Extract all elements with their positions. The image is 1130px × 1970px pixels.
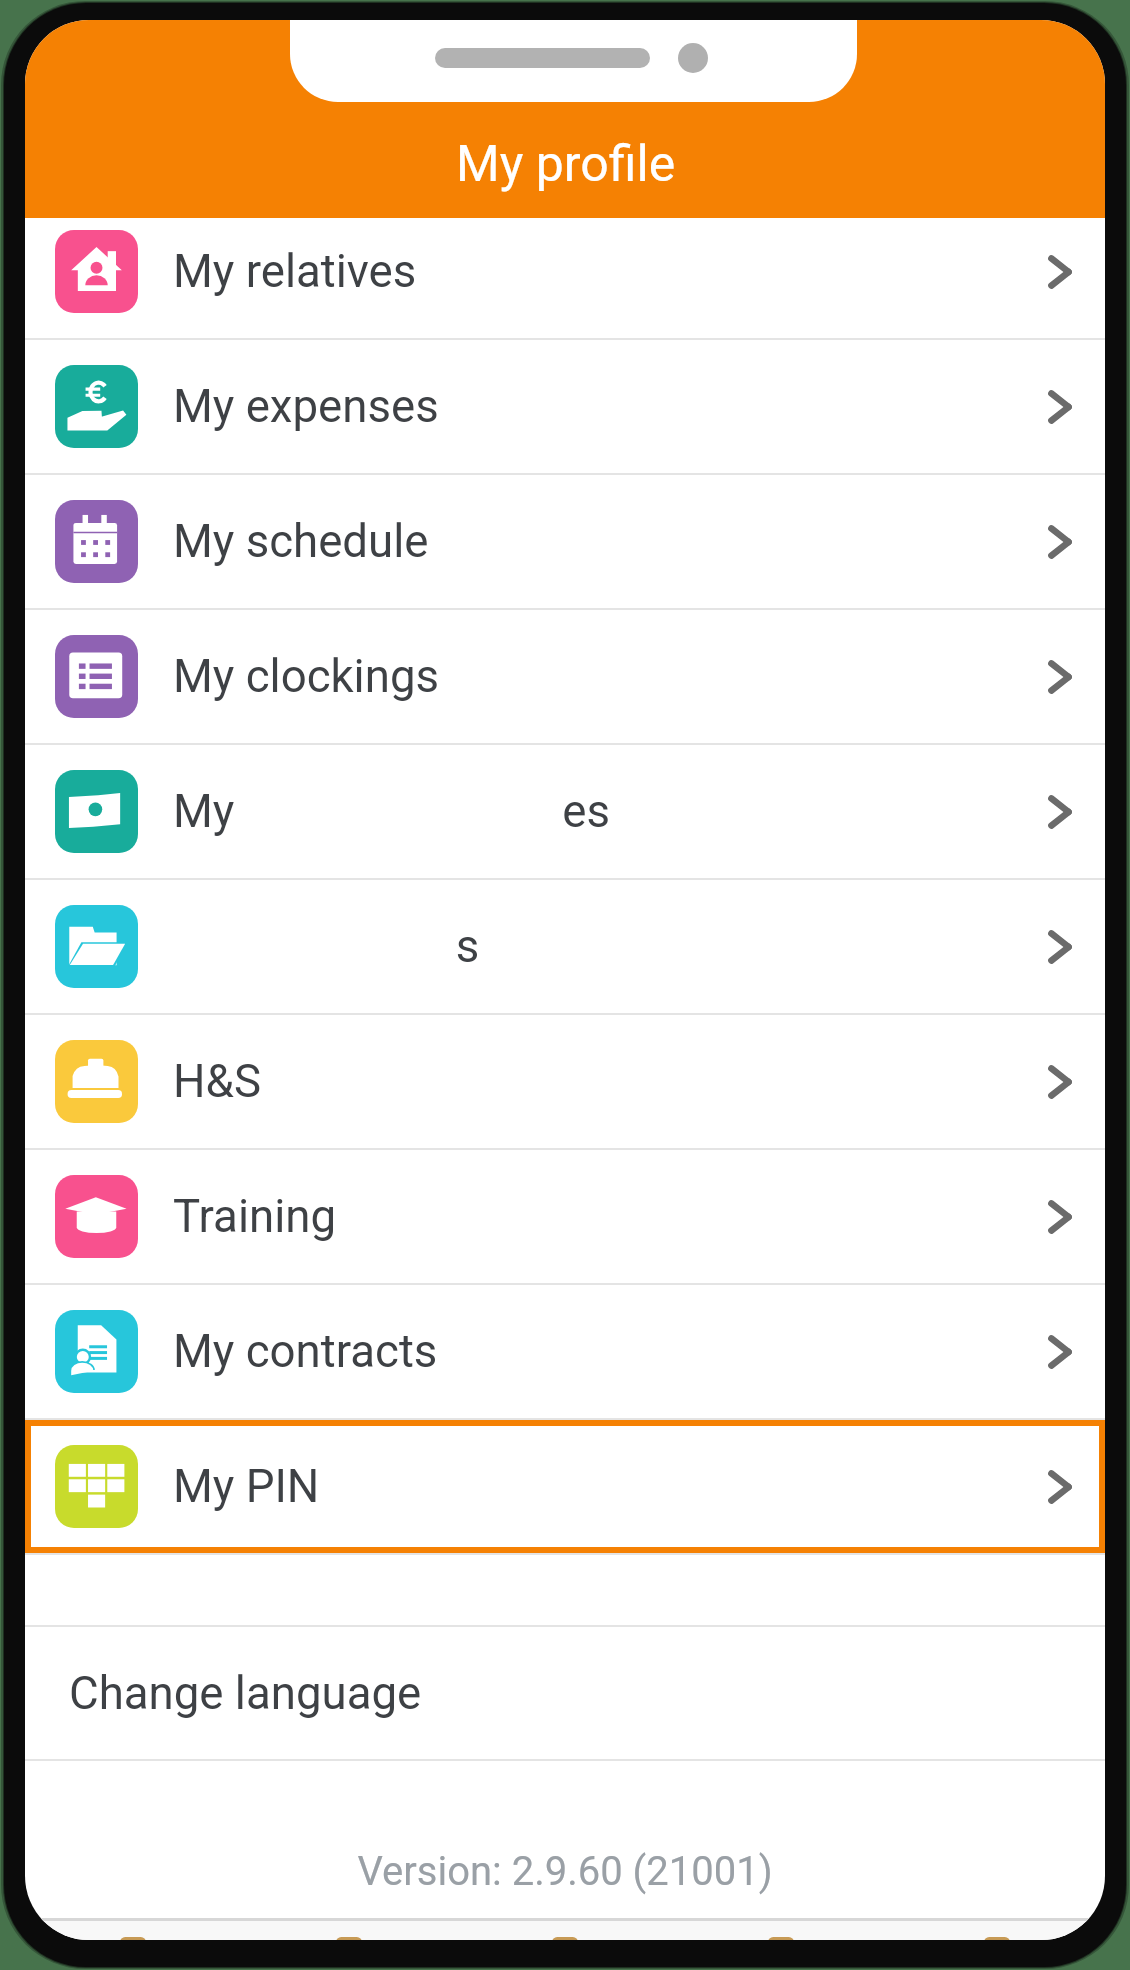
button[interactable]: Tab 5 [889,1937,1105,1940]
button[interactable]: My clockings [25,610,1105,743]
button[interactable]: Training [25,1150,1105,1283]
button[interactable]: My es [25,745,1105,878]
staticText: My expenses [173,380,439,433]
button[interactable]: My relatives [25,205,1105,338]
button[interactable]: My contracts [25,1285,1105,1418]
staticText: Training [173,1190,337,1243]
button[interactable]: Tab 3 [457,1937,673,1940]
staticText: Version: 2.9.60 (21001) [25,1848,1105,1895]
staticText: My clockings [173,650,440,703]
staticText: My schedule [173,515,429,568]
staticText: My profile [456,135,676,194]
staticText: My PIN [173,1460,320,1513]
staticText: My es [173,785,611,838]
button[interactable]: My expenses [25,340,1105,473]
button[interactable]: Tab 4 [673,1937,889,1940]
button[interactable]: My schedule [25,475,1105,608]
staticText: Change language [69,1667,422,1720]
staticText: s [173,920,480,973]
button[interactable]: s [25,880,1105,1013]
button[interactable]: H&S [25,1015,1105,1148]
button[interactable]: Tab 1 [25,1937,241,1940]
staticText: My relatives [173,245,417,298]
button[interactable]: Tab 2 [241,1937,457,1940]
button[interactable]: Change language [25,1627,1105,1759]
staticText: H&S [173,1055,261,1108]
button[interactable]: My PIN [25,1420,1105,1553]
staticText: My contracts [173,1325,438,1378]
